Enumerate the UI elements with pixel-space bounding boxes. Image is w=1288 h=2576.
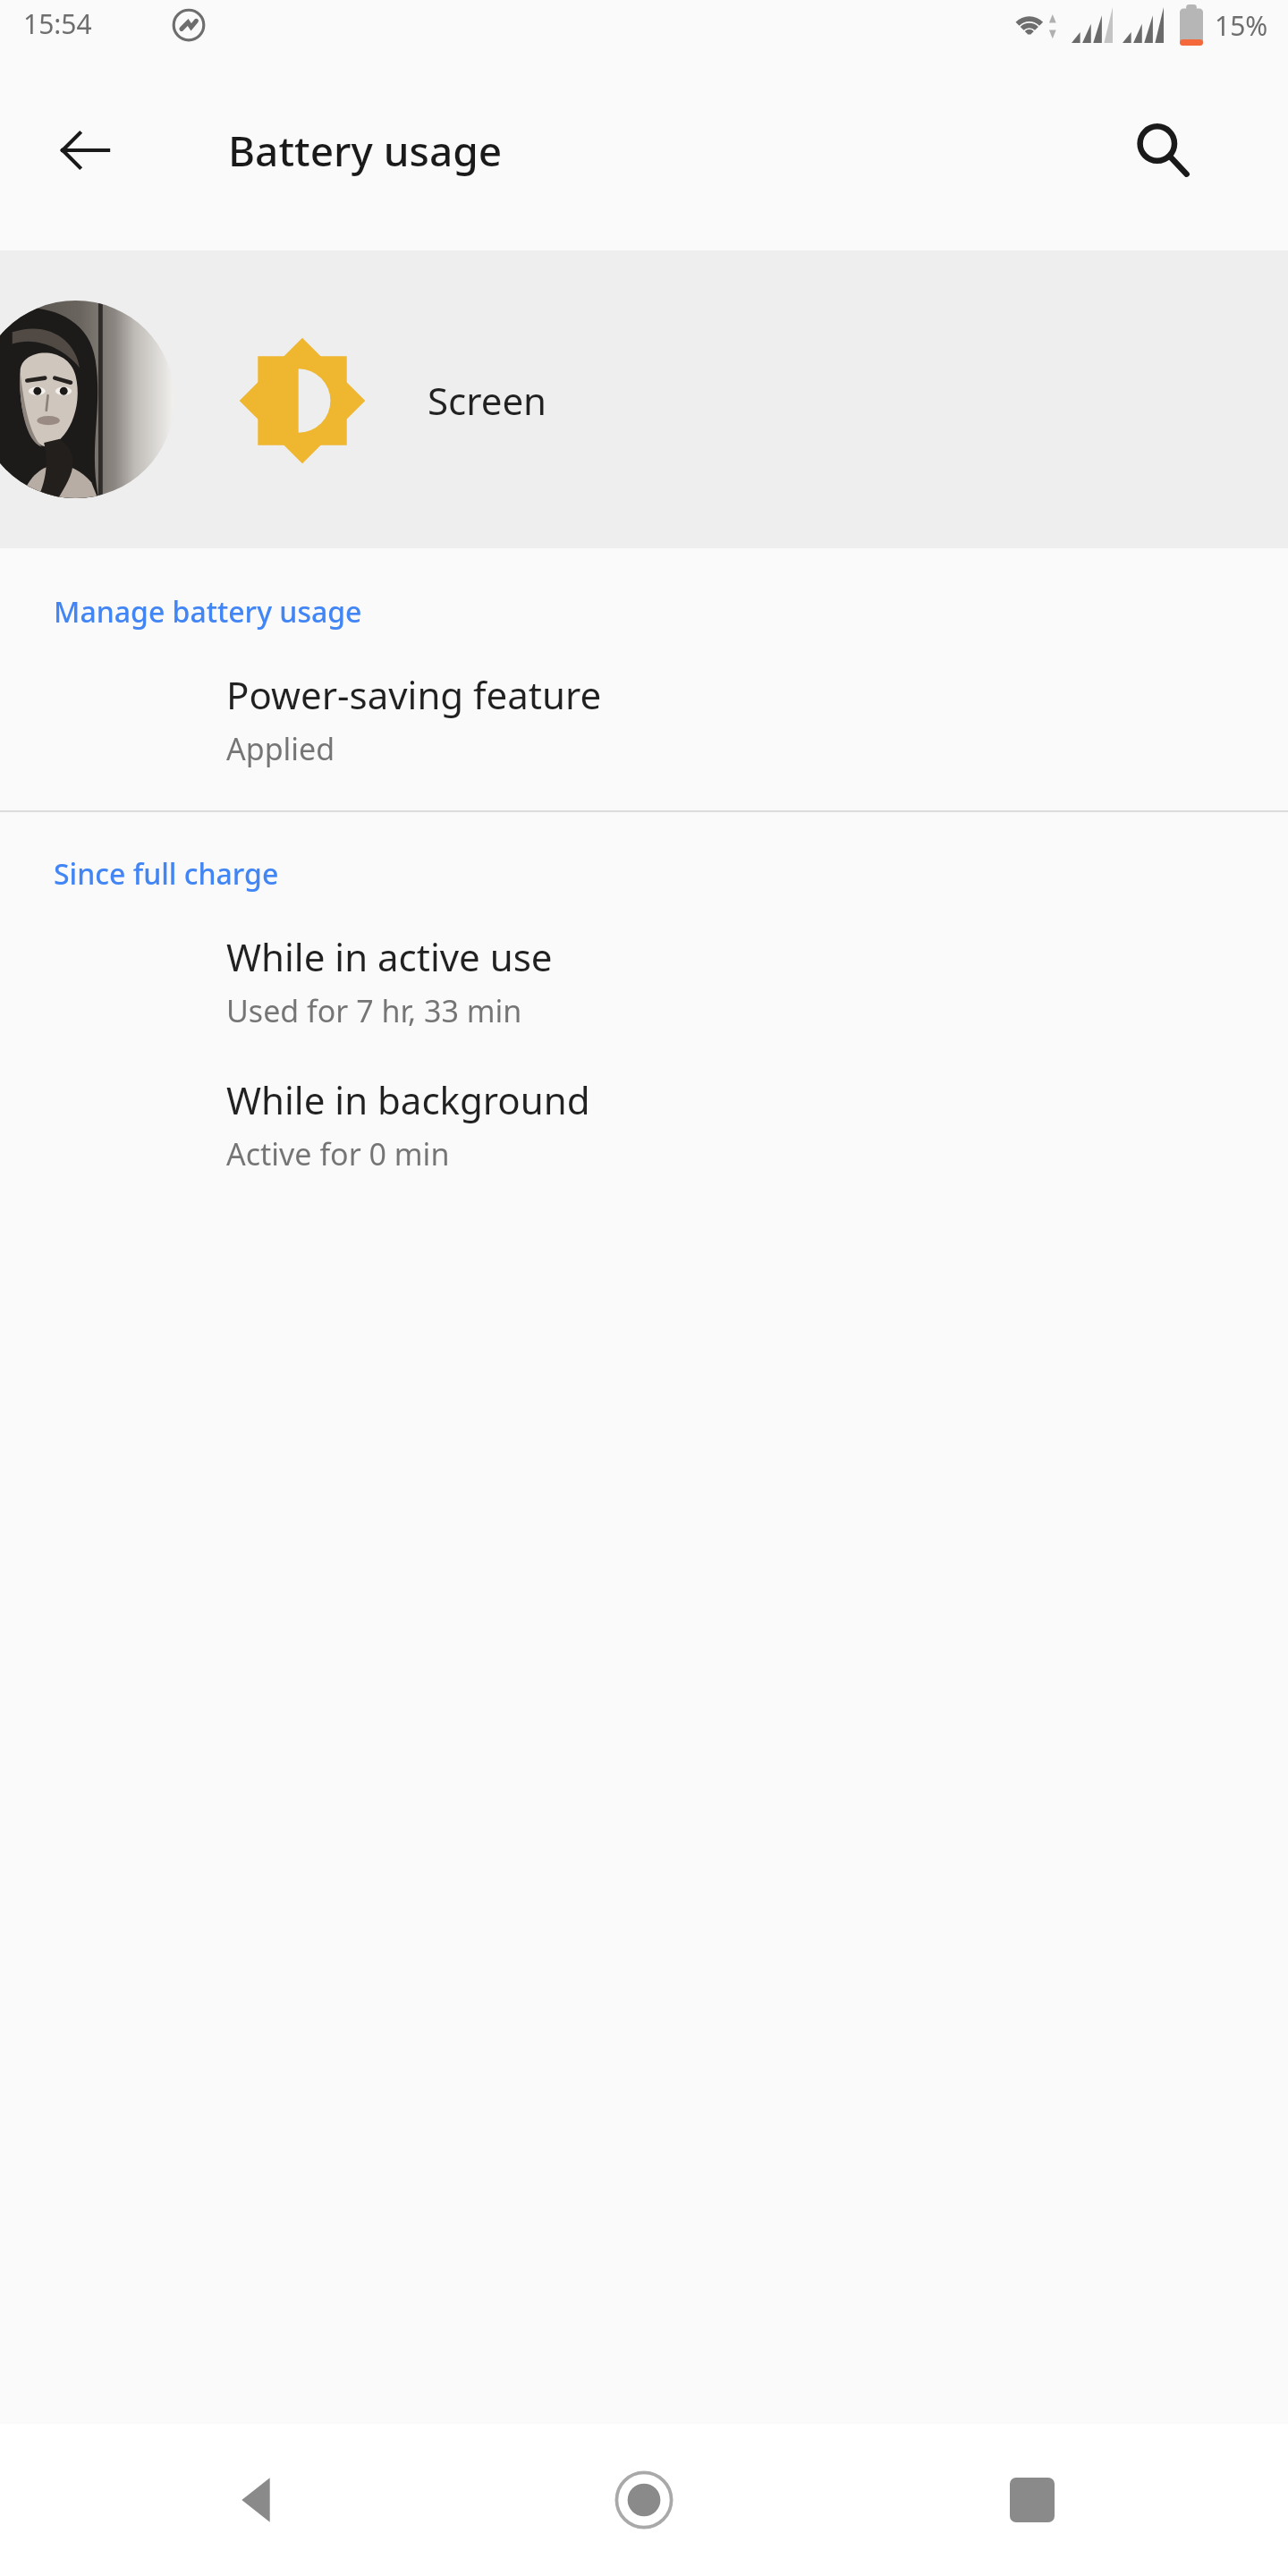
staticText: Manage battery usage bbox=[54, 592, 362, 631]
button[interactable]: Since full charge bbox=[0, 854, 1288, 894]
staticText: 15% bbox=[1215, 7, 1268, 44]
button[interactable]: Manage battery usage bbox=[0, 592, 1288, 631]
staticText: While in background bbox=[226, 1074, 590, 1125]
staticText: While in active use bbox=[226, 931, 553, 982]
staticText: Power-saving feature bbox=[226, 669, 602, 720]
staticText: Used for 7 hr, 33 min bbox=[226, 990, 522, 1031]
button[interactable]: App icon bbox=[0, 301, 174, 498]
button[interactable]: Search bbox=[1107, 95, 1218, 206]
button[interactable]: Back bbox=[202, 2446, 309, 2554]
button[interactable]: While in active use bbox=[0, 931, 1288, 1031]
button[interactable]: Power-saving feature bbox=[0, 669, 1288, 769]
staticText: 15:54 bbox=[23, 5, 92, 42]
staticText: Battery usage bbox=[228, 123, 503, 179]
button[interactable]: While in background bbox=[0, 1074, 1288, 1174]
staticText: Since full charge bbox=[54, 854, 279, 894]
button[interactable]: Recent apps bbox=[979, 2446, 1086, 2554]
button[interactable]: Home bbox=[590, 2446, 698, 2554]
staticText: Screen bbox=[428, 375, 547, 426]
staticText: Applied bbox=[226, 728, 335, 769]
staticText: Active for 0 min bbox=[226, 1133, 450, 1174]
button[interactable]: Back bbox=[30, 95, 140, 206]
